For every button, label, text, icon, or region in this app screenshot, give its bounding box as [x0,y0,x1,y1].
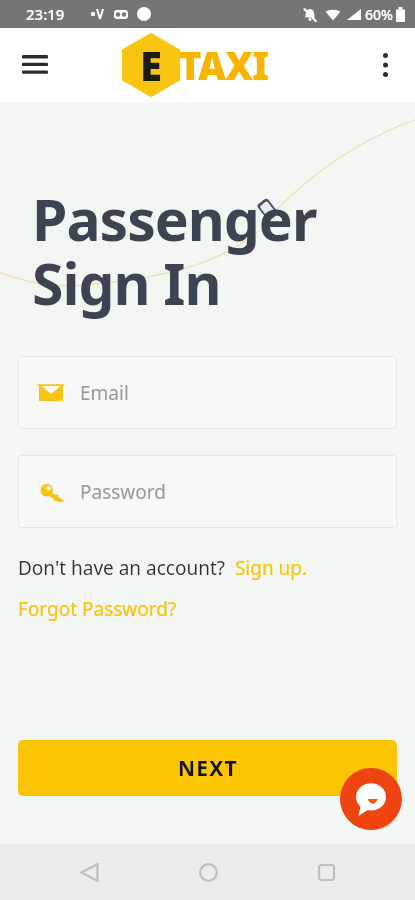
button[interactable]: Back [60,844,118,900]
staticText: Email [80,380,129,406]
button[interactable]: Open navigation menu [12,42,58,88]
button[interactable]: Chat support [340,768,402,830]
button[interactable]: More options [363,43,407,87]
staticText: Don't have an account? Sign up. Forgot P… [18,555,397,622]
button[interactable]: Password [18,455,397,528]
staticText: Passenger Sign In [32,180,317,322]
button[interactable]: Recent apps [297,844,355,900]
staticText: 23:19 [26,4,65,24]
staticText: NEXT [178,754,238,783]
staticText: 60% [365,5,393,24]
staticText: E [140,38,162,92]
button[interactable]: NEXT [18,740,397,796]
button[interactable]: Email [18,356,397,429]
button[interactable]: Don't have an account? Sign up. Forgot P… [18,555,397,622]
staticText: TAXI [179,39,269,91]
staticText: Password [80,479,166,505]
button[interactable]: Home [179,844,237,900]
